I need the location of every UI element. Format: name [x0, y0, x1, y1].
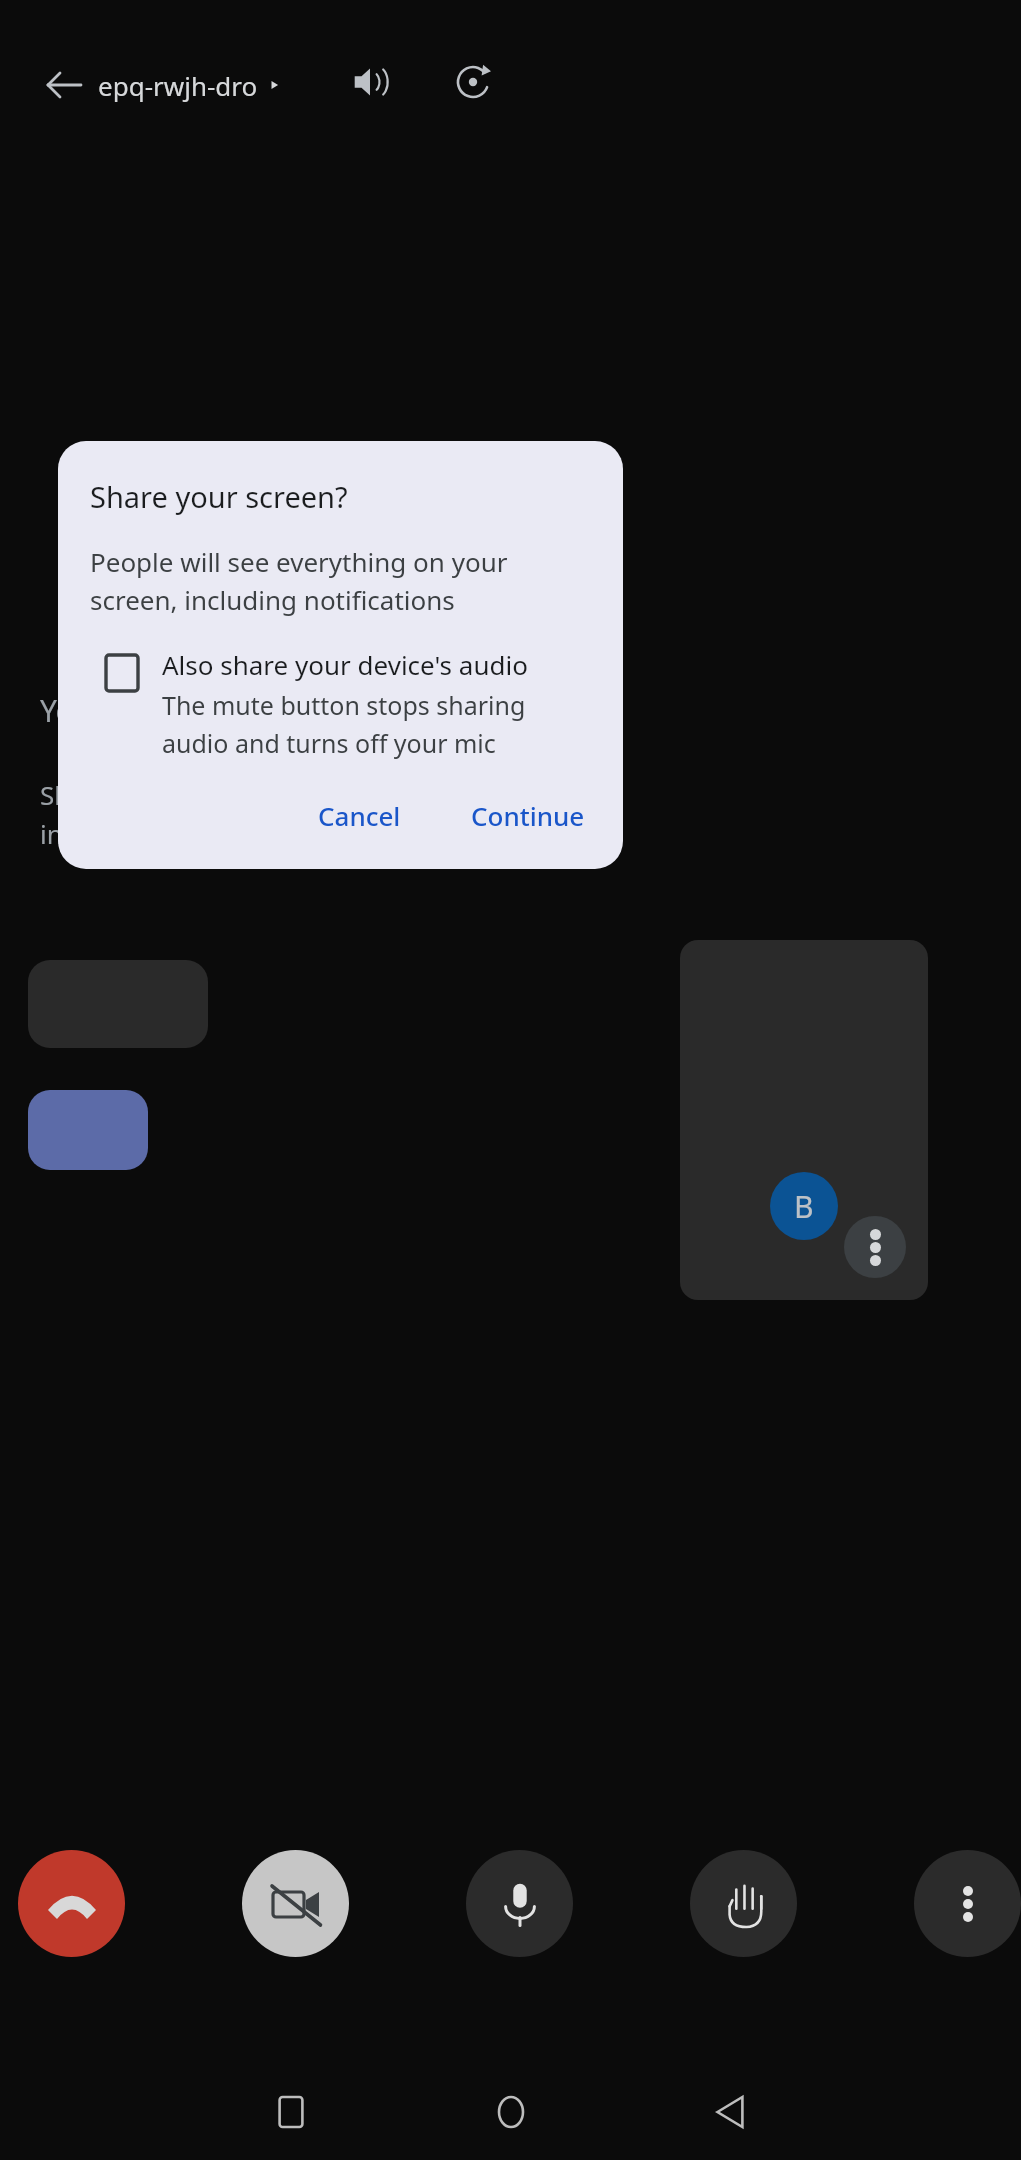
button[interactable]: Mute microphone [466, 1850, 573, 1957]
staticText: People will see everything on your scree… [90, 544, 508, 617]
button[interactable]: Back [34, 54, 96, 116]
button[interactable]: Raise hand [690, 1850, 797, 1957]
button[interactable]: Continue [457, 788, 599, 843]
staticText: Also share your device's audio [162, 647, 528, 682]
button[interactable]: Recents [243, 2064, 339, 2160]
staticText: Share your screen? [90, 477, 348, 516]
button[interactable]: Back [683, 2064, 779, 2160]
staticText: B [794, 1186, 814, 1227]
button[interactable]: Switch camera [443, 52, 503, 112]
button[interactable]: Also share your device's audio [90, 647, 599, 760]
staticText: Continue [471, 798, 585, 833]
button[interactable]: epq-rwjh-dro [98, 48, 282, 122]
button[interactable]: End call [18, 1850, 125, 1957]
staticText: epq-rwjh-dro [98, 68, 258, 103]
button[interactable]: More options [914, 1850, 1021, 1957]
staticText: Share this meeting link with in to join [40, 777, 380, 852]
staticText: You're the only one here [40, 690, 382, 731]
staticText: The mute button stops sharing audio and … [162, 688, 526, 760]
button[interactable]: Speaker [340, 52, 400, 112]
staticText: Cancel [318, 798, 401, 833]
button[interactable]: Home [463, 2064, 559, 2160]
button[interactable]: More options [844, 1216, 906, 1278]
button[interactable]: Turn on camera [242, 1850, 349, 1957]
button[interactable]: Cancel [304, 788, 415, 843]
